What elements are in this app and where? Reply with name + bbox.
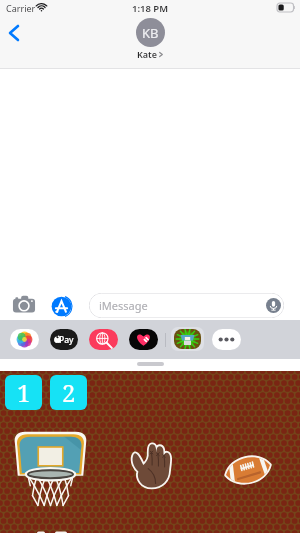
button[interactable]: Glove sticker — [131, 442, 172, 488]
button[interactable]: Dictate — [266, 298, 281, 313]
button[interactable]: Basketball stickers — [171, 327, 204, 351]
staticText: Kate — [137, 48, 158, 60]
button[interactable]: Basketball hoop sticker — [11, 429, 90, 509]
button[interactable]: 1 — [5, 375, 42, 410]
staticText: KB — [142, 24, 159, 42]
button[interactable]: App Store — [51, 296, 72, 317]
staticText: Carrier — [6, 2, 36, 14]
button[interactable]: Football sticker — [224, 455, 272, 485]
button[interactable]: Back — [2, 18, 32, 54]
button[interactable]: Camera — [12, 295, 36, 314]
button[interactable]: Apple Pay — [50, 329, 78, 350]
staticText: iMessage — [99, 298, 148, 313]
button[interactable]: KB — [136, 14, 165, 55]
button[interactable]: 2 — [50, 375, 87, 410]
button[interactable]: Image search — [89, 329, 118, 350]
staticText: Pay — [59, 334, 74, 346]
button[interactable]: Digital Touch — [129, 329, 158, 350]
staticText: 1 — [17, 376, 31, 409]
staticText: 1:18 PM — [0, 2, 300, 15]
staticText: 2 — [62, 376, 76, 409]
button[interactable]: More apps — [212, 329, 241, 350]
button[interactable]: iMessage — [89, 293, 284, 318]
button[interactable]: Photos — [10, 329, 39, 350]
